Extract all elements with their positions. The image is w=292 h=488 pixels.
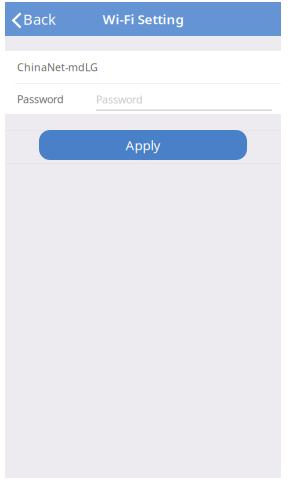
staticText: Back xyxy=(23,9,56,29)
staticText: Password xyxy=(96,92,143,106)
staticText: Password xyxy=(17,92,64,106)
staticText: ChinaNet-mdLG xyxy=(17,60,98,74)
staticText: Wi-Fi Setting xyxy=(102,10,183,28)
button[interactable]: Back xyxy=(5,2,66,36)
button[interactable]: Apply xyxy=(39,130,247,160)
staticText: Apply xyxy=(125,136,160,154)
